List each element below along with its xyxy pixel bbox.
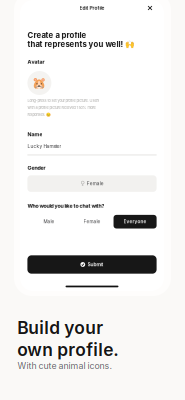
staticText: Female xyxy=(87,181,104,186)
staticText: Edit Profile xyxy=(79,5,104,11)
button[interactable]: Female xyxy=(70,215,114,228)
button[interactable]: Profile picture xyxy=(27,71,51,95)
button[interactable]: Submit xyxy=(27,255,157,274)
staticText: Lucky Hamster xyxy=(27,143,61,149)
staticText: Build your xyxy=(17,317,103,338)
button[interactable]: Edit Profile xyxy=(67,2,117,13)
staticText: Male xyxy=(43,219,54,224)
staticText: 🐹 xyxy=(32,76,46,90)
button[interactable]: Close xyxy=(143,1,156,14)
staticText: own profile. xyxy=(17,339,119,360)
staticText: Long-press to set your profile picture. … xyxy=(27,98,99,117)
staticText: Submit xyxy=(88,262,104,267)
staticText: Name xyxy=(27,131,42,137)
staticText: Gender xyxy=(27,165,45,171)
button[interactable]: Male xyxy=(27,215,70,228)
staticText: Create a profile xyxy=(27,30,86,40)
button[interactable]: Female xyxy=(27,175,157,192)
staticText: Who would you like to chat with? xyxy=(27,203,104,209)
staticText: Female xyxy=(83,219,100,224)
button[interactable]: Everyone xyxy=(113,215,157,228)
staticText: that represents you well! 🙌 xyxy=(27,40,135,49)
staticText: Avatar xyxy=(27,59,44,65)
staticText: Everyone xyxy=(124,219,147,224)
staticText: With cute animal icons. xyxy=(17,360,112,371)
